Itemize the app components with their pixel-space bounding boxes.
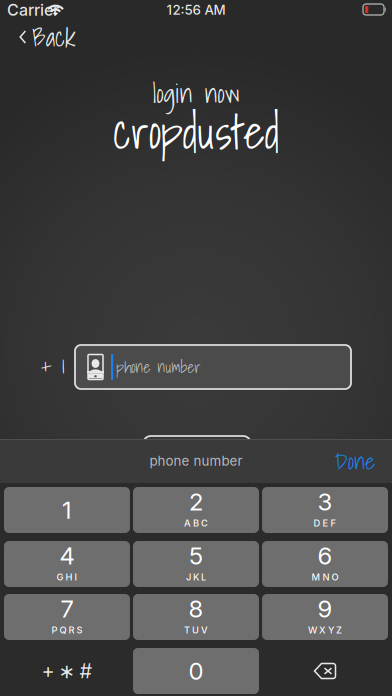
staticText: W X Y Z: [308, 624, 342, 636]
button[interactable]: 0: [133, 648, 259, 694]
staticText: phone number: [116, 354, 200, 380]
staticText: Back: [32, 17, 76, 57]
staticText: 4: [59, 541, 74, 570]
button[interactable]: Back: [8, 22, 118, 52]
staticText: Done: [335, 443, 375, 479]
staticText: 0: [188, 656, 203, 685]
button[interactable]: 2: [133, 487, 259, 533]
staticText: T U V: [184, 624, 208, 636]
staticText: M N O: [311, 571, 338, 583]
staticText: 2: [189, 487, 203, 516]
staticText: 3: [317, 487, 332, 516]
button[interactable]: Delete: [262, 648, 388, 694]
button[interactable]: 9: [262, 594, 388, 640]
button[interactable]: 7: [4, 594, 130, 640]
staticText: G H I: [56, 571, 77, 583]
staticText: + ∗ #: [41, 659, 92, 683]
staticText: 8: [188, 594, 203, 623]
button[interactable]: Done: [318, 439, 392, 483]
staticText: P Q R S: [51, 624, 82, 636]
staticText: A B C: [184, 517, 208, 529]
staticText: 7: [60, 594, 73, 623]
staticText: D E F: [313, 517, 336, 529]
button[interactable]: 4: [4, 541, 130, 587]
button[interactable]: + ∗ #: [4, 648, 130, 694]
button[interactable]: 5: [133, 541, 259, 587]
button[interactable]: 1: [4, 487, 130, 533]
staticText: J K L: [186, 571, 206, 583]
button[interactable]: 6: [262, 541, 388, 587]
staticText: 6: [317, 541, 332, 570]
staticText: login now: [152, 72, 239, 114]
button[interactable]: Continue: [143, 436, 251, 480]
button[interactable]: 3: [262, 487, 388, 533]
button[interactable]: 8: [133, 594, 259, 640]
staticText: cropdusted: [113, 96, 279, 168]
staticText: 5: [189, 541, 203, 570]
staticText: + 1: [41, 347, 65, 383]
staticText: Carrier: [7, 0, 59, 20]
staticText: 1: [62, 495, 72, 524]
staticText: 9: [317, 594, 332, 623]
staticText: phone number: [149, 453, 242, 469]
staticText: 12:56 AM: [166, 2, 225, 18]
